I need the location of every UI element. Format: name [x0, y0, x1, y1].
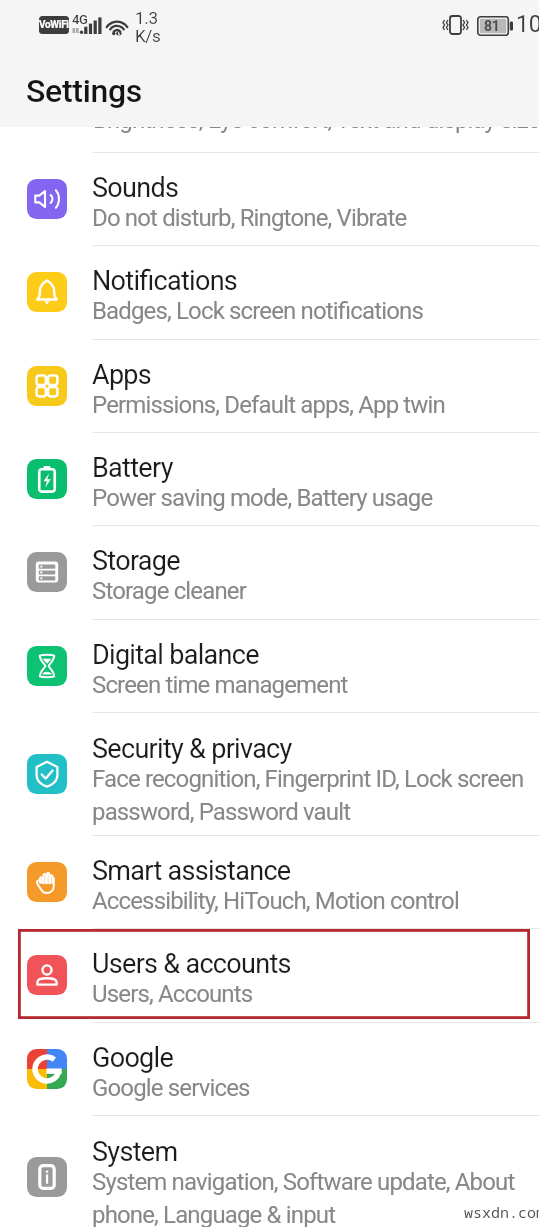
staticText: Accessibility, HiTouch, Motion control	[92, 887, 459, 915]
button[interactable]: Storage	[0, 525, 539, 619]
staticText: Security & privacy	[92, 733, 292, 765]
staticText: 4G	[72, 12, 88, 27]
staticText: 1.3	[135, 8, 158, 28]
staticText: 81	[484, 18, 500, 34]
staticText: Apps	[92, 359, 152, 391]
button[interactable]: Users & accounts	[0, 928, 539, 1022]
staticText: Digital balance	[92, 639, 259, 671]
button[interactable]: Apps	[0, 339, 539, 432]
staticText: Smart assistance	[92, 855, 291, 887]
staticText: Face recognition, Fingerprint ID, Lock s…	[92, 765, 524, 826]
staticText: Battery	[92, 452, 173, 484]
staticText: System	[92, 1136, 178, 1168]
staticText: Storage cleaner	[92, 577, 246, 605]
button[interactable]: Sounds	[0, 152, 539, 245]
button[interactable]: Security & privacy	[0, 712, 539, 835]
staticText: Brightness, Eye comfort, Text and displa…	[93, 106, 539, 134]
button[interactable]: System	[0, 1115, 539, 1227]
button[interactable]: Smart assistance	[0, 835, 539, 928]
staticText: VoWiFi	[39, 19, 69, 31]
staticText: Google	[92, 1042, 174, 1074]
staticText: System navigation, Software update, Abou…	[92, 1168, 515, 1227]
staticText: Screen time management	[92, 671, 348, 699]
staticText: K/s	[135, 26, 161, 46]
staticText: Power saving mode, Battery usage	[92, 484, 433, 512]
staticText: Do not disturb, Ringtone, Vibrate	[92, 204, 407, 232]
staticText: Users & accounts	[92, 948, 291, 980]
button[interactable]: Notifications	[0, 245, 539, 339]
button[interactable]: Battery	[0, 432, 539, 525]
staticText: Sounds	[92, 172, 179, 204]
staticText: Google services	[92, 1074, 250, 1102]
button[interactable]: Digital balance	[0, 619, 539, 712]
staticText: wsxdn.com	[464, 1202, 539, 1222]
staticText: Storage	[92, 545, 180, 577]
staticText: Users, Accounts	[92, 980, 253, 1008]
staticText: Permissions, Default apps, App twin	[92, 391, 445, 419]
staticText: Notifications	[92, 265, 238, 297]
button[interactable]: Google	[0, 1022, 539, 1115]
staticText: 10	[516, 11, 539, 38]
staticText: Badges, Lock screen notifications	[92, 297, 423, 325]
staticText: Settings	[26, 72, 143, 110]
